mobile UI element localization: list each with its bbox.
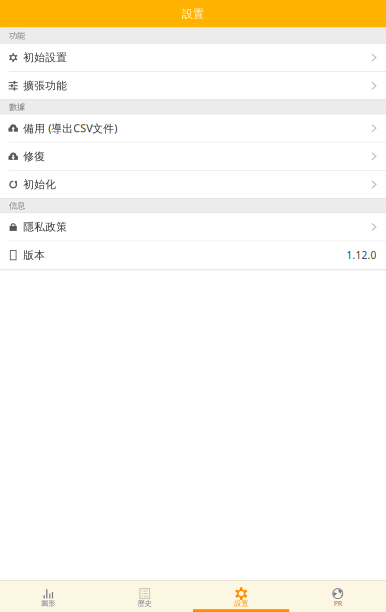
staticText: 版本 [23,248,45,262]
button[interactable]: 版本 [0,241,386,269]
staticText: 備用 (導出CSV文件) [23,121,117,135]
staticText: 數據 [9,102,25,112]
staticText: 功能 [9,30,25,41]
button[interactable]: 隱私政策 [0,213,386,241]
staticText: 設置 [234,599,248,608]
staticText: 修復 [23,150,45,163]
staticText: 擴張功能 [23,79,67,92]
button[interactable]: 歷史 [96,581,193,612]
staticText: PR [334,598,342,608]
staticText: 1.12.0 [346,248,376,262]
staticText: 隱私政策 [23,220,67,234]
button[interactable]: PR [289,581,386,612]
staticText: 圖形 [41,599,55,608]
button[interactable]: 設置 [193,581,289,612]
button[interactable]: 初始設置 [0,44,386,71]
staticText: 設置 [182,7,204,21]
button[interactable]: 備用 (導出CSV文件) [0,114,386,142]
staticText: 歷史 [138,599,152,608]
button[interactable]: 修復 [0,143,386,170]
button[interactable]: 初始化 [0,171,386,198]
staticText: 信息 [9,200,25,211]
button[interactable]: 擴張功能 [0,72,386,99]
staticText: 初始化 [23,178,56,191]
staticText: 初始設置 [23,51,67,64]
button[interactable]: 圖形 [0,581,96,612]
